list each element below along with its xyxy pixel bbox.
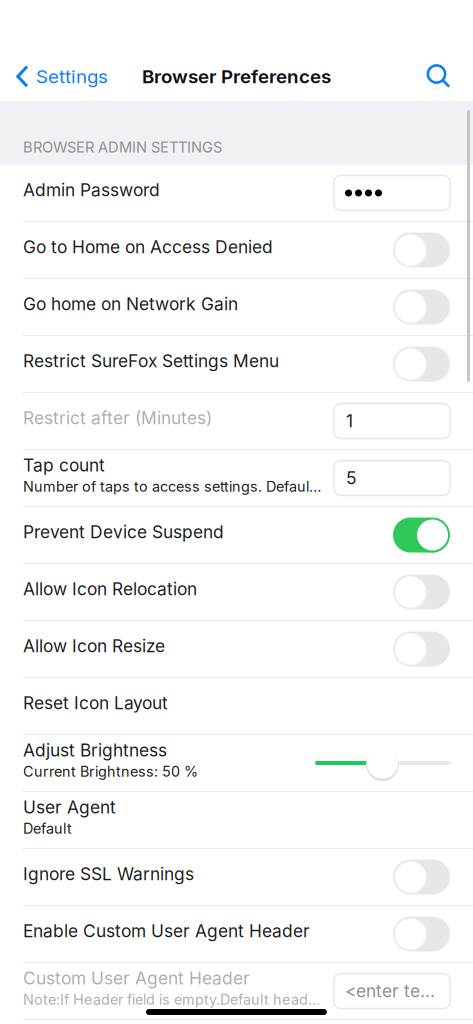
staticText: Allow Icon Relocation bbox=[23, 578, 197, 599]
staticText: Settings bbox=[36, 65, 108, 88]
button[interactable]: Reset Icon Layout bbox=[0, 678, 473, 735]
staticText: Note:If Header field is empty.Default he… bbox=[23, 991, 320, 1008]
staticText: Number of taps to access settings. Defau… bbox=[23, 478, 321, 495]
button[interactable]: Admin Password bbox=[0, 165, 473, 222]
staticText: Browser Preferences bbox=[142, 65, 331, 88]
staticText: Current Brightness: 50 % bbox=[23, 763, 198, 780]
button[interactable]: Tap count bbox=[0, 450, 473, 507]
button[interactable]: Enable Custom User Agent Header bbox=[0, 906, 473, 963]
staticText: Tap count bbox=[23, 455, 105, 476]
button[interactable]: Allow Icon Relocation bbox=[0, 564, 473, 621]
staticText: <enter te… bbox=[345, 980, 435, 1001]
staticText: BROWSER ADMIN SETTINGS bbox=[23, 138, 222, 156]
staticText: Go to Home on Access Denied bbox=[23, 236, 273, 257]
button[interactable]: Allow Icon Resize bbox=[0, 621, 473, 678]
button[interactable]: Prevent Device Suspend bbox=[0, 507, 473, 564]
button[interactable]: Restrict after (Minutes) bbox=[0, 393, 473, 450]
staticText: Restrict after (Minutes) bbox=[23, 407, 212, 428]
button[interactable]: Go to Home on Access Denied bbox=[0, 222, 473, 279]
staticText: Go home on Network Gain bbox=[23, 293, 238, 314]
staticText: Prevent Device Suspend bbox=[23, 521, 224, 542]
staticText: Ignore SSL Warnings bbox=[23, 863, 194, 884]
button[interactable]: Custom User Agent Header bbox=[0, 963, 473, 1020]
staticText: Default bbox=[23, 820, 72, 837]
staticText: Adjust Brightness bbox=[23, 740, 167, 761]
staticText: User Agent bbox=[23, 797, 116, 818]
button[interactable]: Search bbox=[413, 52, 473, 101]
button[interactable]: Adjust Brightness bbox=[0, 735, 473, 792]
staticText: Enable Custom User Agent Header bbox=[23, 920, 310, 941]
staticText: Admin Password bbox=[23, 179, 160, 200]
staticText: Allow Icon Resize bbox=[23, 635, 165, 656]
staticText: Reset Icon Layout bbox=[23, 692, 168, 713]
staticText: Custom User Agent Header bbox=[23, 968, 250, 989]
staticText: Restrict SureFox Settings Menu bbox=[23, 350, 279, 371]
staticText: 5 bbox=[346, 467, 357, 488]
staticText: 1 bbox=[346, 410, 353, 431]
button[interactable]: Go home on Network Gain bbox=[0, 279, 473, 336]
button[interactable]: Settings bbox=[0, 52, 118, 101]
button[interactable]: User Agent bbox=[0, 792, 473, 849]
button[interactable]: Restrict SureFox Settings Menu bbox=[0, 336, 473, 393]
button[interactable]: Ignore SSL Warnings bbox=[0, 849, 473, 906]
